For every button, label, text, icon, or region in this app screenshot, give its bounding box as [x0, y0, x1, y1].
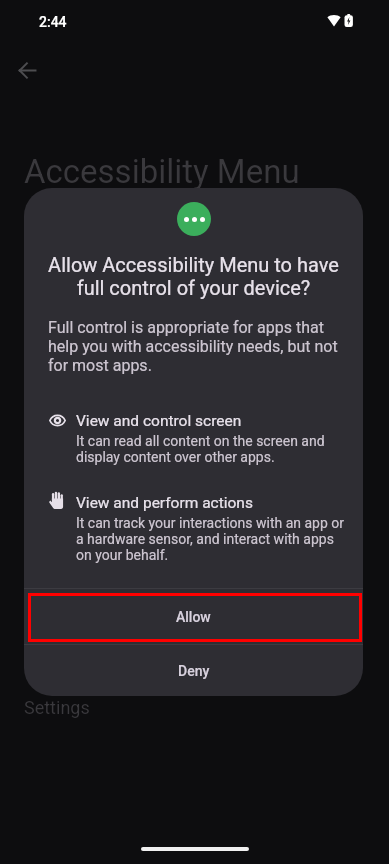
staticText: Deny — [178, 663, 210, 679]
staticText: View and perform actions — [76, 494, 253, 512]
staticText: 2:44 — [39, 14, 67, 30]
staticText: Settings — [24, 697, 90, 718]
staticText: Allow — [176, 609, 211, 625]
staticText: It can read all content on the screen an… — [76, 433, 348, 465]
button[interactable]: Allow — [24, 589, 363, 644]
staticText: Accessibility Menu — [24, 152, 300, 191]
staticText: Full control is appropriate for apps tha… — [48, 318, 343, 375]
staticText: It can track your interactions with an a… — [76, 515, 348, 563]
staticText: Allow Accessibility Menu to have full co… — [45, 253, 342, 299]
staticText: View and control screen — [76, 412, 242, 430]
button[interactable]: Deny — [24, 645, 363, 696]
button[interactable]: Back — [10, 53, 44, 87]
